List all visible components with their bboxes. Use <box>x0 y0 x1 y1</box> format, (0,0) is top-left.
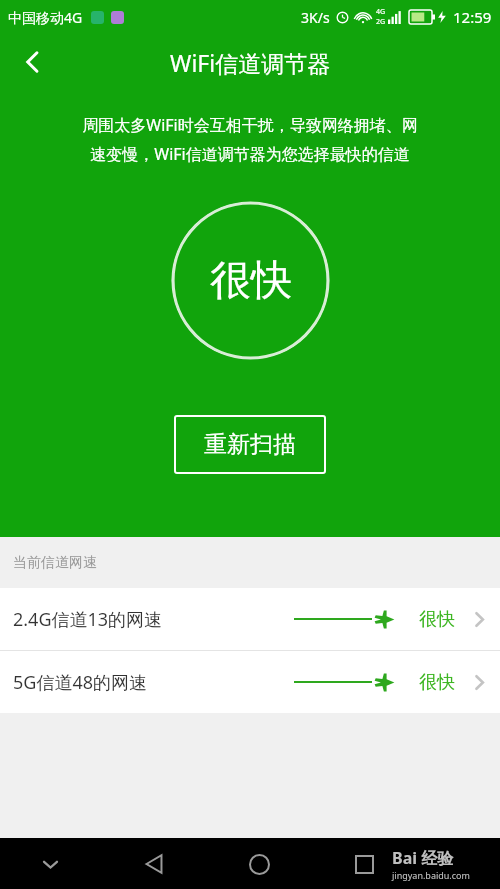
staticText: jingyan.baidu.com <box>392 869 470 881</box>
staticText: Bai 经验 <box>392 847 454 869</box>
button[interactable]: Back <box>132 842 176 886</box>
staticText: 5G信道48的网速 <box>13 670 147 695</box>
staticText: 周围太多WiFi时会互相干扰，导致网络拥堵、网 速变慢，WiFi信道调节器为您选… <box>30 114 470 165</box>
staticText: 2G <box>376 17 386 27</box>
button[interactable]: 重新扫描 <box>174 415 326 474</box>
button[interactable]: Hide <box>30 844 70 884</box>
staticText: 4G <box>376 7 386 17</box>
button[interactable]: 5G信道48的网速 <box>0 651 500 713</box>
staticText: 12:59 <box>453 7 492 27</box>
staticText: 很快 <box>419 608 455 631</box>
staticText: WiFi信道调节器 <box>170 47 331 78</box>
staticText: 2.4G信道13的网速 <box>13 607 163 632</box>
button[interactable]: Home <box>237 842 281 886</box>
button[interactable]: 2.4G信道13的网速 <box>0 588 500 650</box>
staticText: 重新扫描 <box>204 430 296 459</box>
staticText: 很快 <box>210 255 292 307</box>
button[interactable]: Back <box>10 39 56 85</box>
staticText: 中国移动4G <box>8 8 83 27</box>
button[interactable]: Speed gauge <box>171 201 330 360</box>
button[interactable]: Recents <box>342 842 386 886</box>
staticText: 3K/s <box>301 8 330 27</box>
staticText: 很快 <box>419 671 455 694</box>
staticText: 当前信道网速 <box>13 554 97 572</box>
